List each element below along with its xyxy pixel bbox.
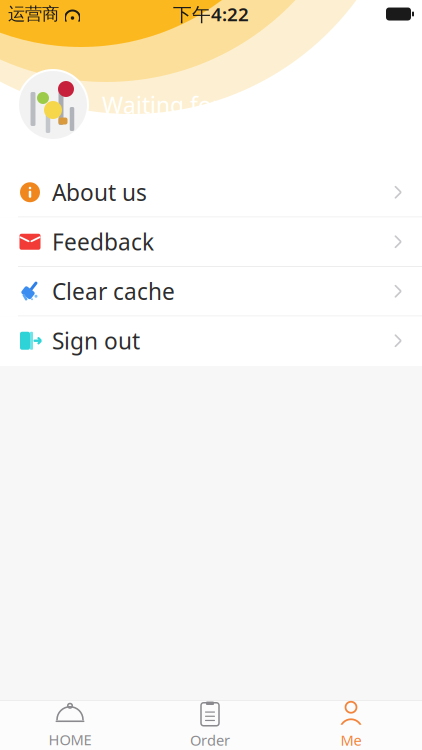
button[interactable]: Clear cache bbox=[0, 267, 422, 316]
button[interactable]: Order bbox=[140, 701, 280, 750]
button[interactable]: HOME bbox=[0, 701, 140, 750]
staticText: Feedback bbox=[52, 227, 154, 257]
staticText: 下午4:22 bbox=[173, 2, 249, 26]
staticText: Me bbox=[340, 730, 361, 750]
staticText: HOME bbox=[48, 730, 91, 749]
button[interactable]: About us bbox=[0, 168, 422, 217]
staticText: Order bbox=[190, 730, 230, 750]
staticText: About us bbox=[52, 177, 147, 207]
staticText: Waiting for grandson bbox=[102, 90, 330, 120]
staticText: Clear cache bbox=[52, 276, 175, 306]
button[interactable]: Me bbox=[280, 701, 422, 750]
staticText: 运营商 bbox=[8, 3, 59, 25]
button[interactable]: Feedback bbox=[0, 217, 422, 267]
button[interactable]: Sign out bbox=[0, 316, 422, 366]
staticText: Sign out bbox=[52, 326, 140, 356]
